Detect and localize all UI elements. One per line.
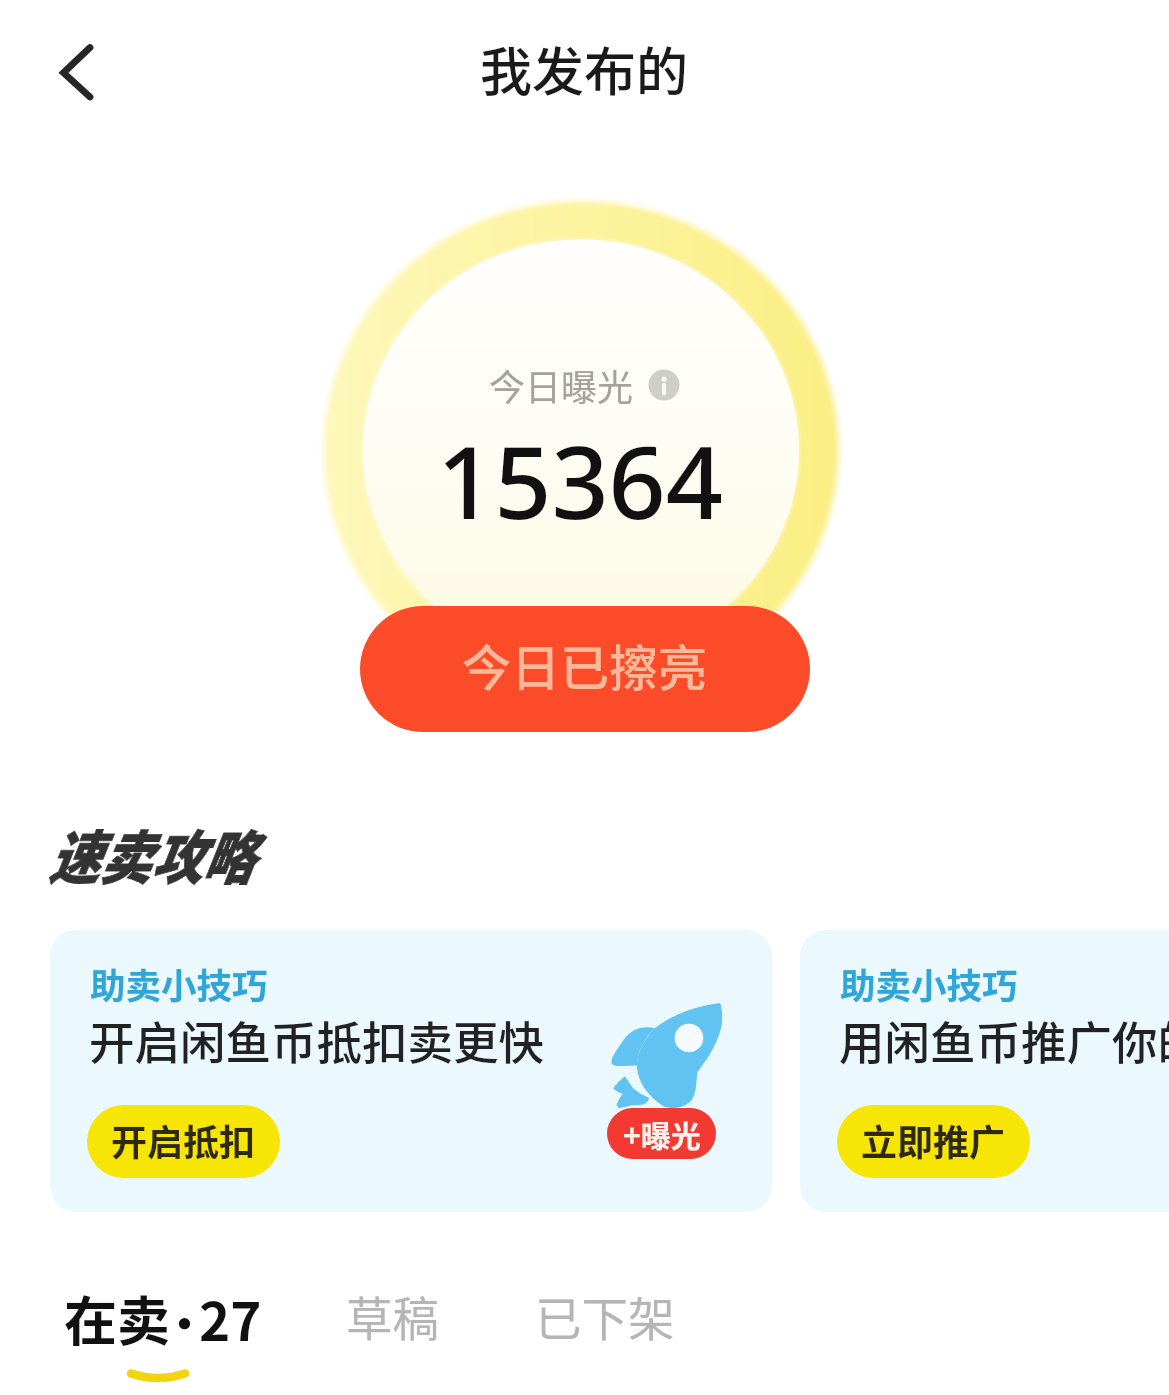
staticText: 在卖 — [64, 1280, 170, 1357]
staticText: 今日曝光 — [489, 359, 634, 411]
staticText: 已下架 — [535, 1282, 675, 1349]
button[interactable]: 助卖小技巧 — [50, 930, 772, 1212]
staticText: 助卖小技巧 — [840, 958, 1018, 1009]
staticText: 开启抵扣 — [111, 1114, 256, 1166]
staticText: 助卖小技巧 — [90, 958, 268, 1009]
staticText: 速卖攻略 — [48, 812, 254, 896]
staticText: 我发布的 — [480, 31, 689, 106]
staticText: 草稿 — [346, 1282, 439, 1349]
button[interactable]: 已下架 — [525, 1274, 685, 1354]
button[interactable]: 草稿 — [336, 1274, 452, 1354]
staticText: 用闲鱼币推广你的宝贝 — [839, 1007, 1169, 1073]
button[interactable]: 今日已擦亮 — [360, 606, 810, 732]
staticText: 开启闲鱼币抵扣卖更快 — [89, 1007, 545, 1073]
staticText: 速卖攻略 — [48, 812, 254, 896]
staticText: 立即推广 — [861, 1114, 1006, 1166]
staticText: +曝光 — [623, 1112, 701, 1155]
staticText: 15364 — [437, 412, 723, 548]
button[interactable]: 在卖 — [56, 1274, 262, 1395]
button[interactable]: 开启抵扣 — [87, 1105, 280, 1178]
button[interactable]: Back — [29, 27, 115, 113]
staticText: 27 — [199, 1280, 262, 1357]
button[interactable]: 立即推广 — [837, 1105, 1030, 1178]
button[interactable]: 助卖小技巧 — [800, 930, 1169, 1212]
staticText: 今日已擦亮 — [462, 629, 708, 700]
